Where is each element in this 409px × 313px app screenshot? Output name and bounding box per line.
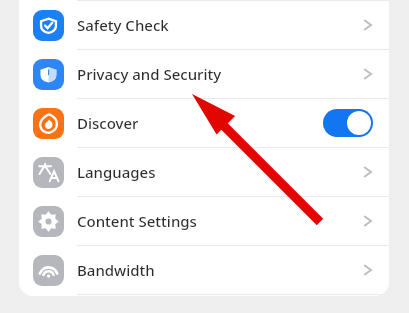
staticText: Languages	[77, 162, 156, 182]
button[interactable]: Bandwidth	[19, 246, 389, 294]
staticText: Privacy and Security	[77, 64, 222, 84]
button[interactable]: Languages	[19, 148, 389, 196]
button[interactable]: Discover	[19, 99, 389, 147]
button[interactable]: Safety Check	[19, 1, 389, 49]
staticText: Safety Check	[77, 15, 169, 35]
button[interactable]: Discover toggle, on	[323, 109, 373, 137]
staticText: Discover	[77, 113, 139, 133]
staticText: Bandwidth	[77, 260, 155, 280]
staticText: Content Settings	[77, 211, 197, 231]
button[interactable]: Content Settings	[19, 197, 389, 245]
button[interactable]: Privacy and Security	[19, 50, 389, 98]
